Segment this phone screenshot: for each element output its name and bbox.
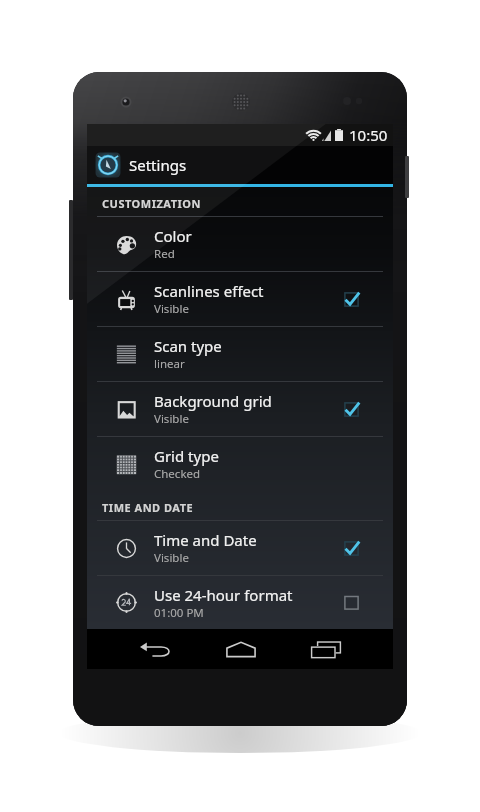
staticText: Visible — [154, 550, 189, 566]
button[interactable]: Use 24-hour format — [87, 576, 393, 629]
staticText: 10:50 — [349, 125, 388, 145]
staticText: Scanlines effect — [154, 281, 264, 301]
staticText: Color — [154, 226, 192, 246]
button[interactable]: Back — [113, 629, 198, 669]
staticText: Visible — [154, 301, 189, 317]
button[interactable]: Scan type — [87, 327, 393, 381]
staticText: Grid type — [154, 446, 219, 466]
staticText: TIME AND DATE — [102, 500, 194, 515]
button[interactable]: Color — [87, 217, 393, 271]
staticText: Time and Date — [154, 530, 257, 550]
staticText: Visible — [154, 411, 189, 427]
staticText: Background grid — [154, 391, 272, 411]
button[interactable]: Checked — [326, 272, 376, 326]
button[interactable]: Background grid — [87, 382, 393, 436]
staticText: Settings — [129, 155, 187, 175]
staticText: linear — [154, 356, 185, 372]
button[interactable]: Scanlines effect — [87, 272, 393, 326]
button[interactable]: Checked — [326, 382, 376, 436]
staticText: Scan type — [154, 336, 222, 356]
staticText: Use 24-hour format — [154, 585, 293, 605]
staticText: Checked — [154, 466, 201, 482]
staticText: CUSTOMIZATION — [102, 196, 201, 211]
button[interactable]: Recent apps — [283, 629, 368, 669]
button[interactable]: Grid type — [87, 437, 393, 491]
button[interactable]: Checked — [326, 521, 376, 575]
staticText: Red — [154, 246, 175, 262]
button[interactable]: Home — [198, 629, 283, 669]
button[interactable]: Unchecked — [326, 576, 376, 629]
staticText: 01:00 PM — [154, 605, 204, 621]
button[interactable]: Time and Date — [87, 521, 393, 575]
